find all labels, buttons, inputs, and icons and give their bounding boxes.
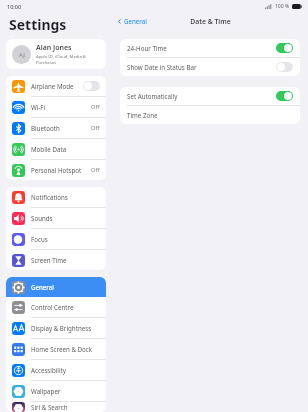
staticText: Mobile Data <box>31 145 100 153</box>
button[interactable]: Personal Hotspot <box>6 160 106 180</box>
staticText: Off <box>91 166 100 174</box>
staticText: Sounds <box>31 214 100 222</box>
staticText: Wi-Fi <box>31 103 91 111</box>
staticText: Airplane Mode <box>31 82 83 90</box>
button[interactable]: On <box>276 43 293 53</box>
button[interactable]: Set Automatically <box>120 87 300 105</box>
button[interactable]: General <box>6 277 106 297</box>
staticText: Time Zone <box>127 111 158 119</box>
staticText: Date & Time <box>190 17 231 26</box>
staticText: Apple ID, iCloud, Media & Purchases <box>36 54 100 66</box>
staticText: AJ <box>19 51 25 59</box>
button[interactable]: Airplane Mode <box>6 76 106 96</box>
staticText: 10:00 <box>7 3 22 10</box>
staticText: General <box>31 283 100 291</box>
button[interactable]: Mobile Data <box>6 139 106 159</box>
button[interactable]: Accessibility <box>6 360 106 380</box>
button[interactable]: Off <box>276 62 293 72</box>
staticText: General <box>124 17 147 25</box>
staticText: Siri & Search <box>31 403 100 411</box>
button[interactable]: Off <box>83 81 100 91</box>
button[interactable]: General <box>115 15 149 27</box>
staticText: Set Automatically <box>127 92 276 100</box>
staticText: Display & Brightness <box>31 324 100 332</box>
staticText: Accessibility <box>31 366 100 374</box>
button[interactable]: Siri & Search <box>6 402 106 412</box>
staticText: Notifications <box>31 193 100 201</box>
button[interactable]: AJ <box>6 39 106 69</box>
button[interactable]: Screen Time <box>6 250 106 270</box>
staticText: 24-Hour Time <box>127 44 276 52</box>
button[interactable]: Time Zone <box>120 106 300 124</box>
staticText: Off <box>91 103 100 111</box>
button[interactable]: Wi-Fi <box>6 97 106 117</box>
button[interactable]: Control Centre <box>6 297 106 317</box>
button[interactable]: Bluetooth <box>6 118 106 138</box>
button[interactable]: Display & Brightness <box>6 318 106 338</box>
button[interactable]: On <box>276 91 293 101</box>
button[interactable]: Focus <box>6 229 106 249</box>
staticText: Alan Jones <box>36 43 72 53</box>
staticText: Bluetooth <box>31 124 91 132</box>
button[interactable]: Wallpaper <box>6 381 106 401</box>
staticText: Personal Hotspot <box>31 166 91 174</box>
staticText: Focus <box>31 235 100 243</box>
staticText: Off <box>91 124 100 132</box>
staticText: Show Date in Status Bar <box>127 63 276 71</box>
button[interactable]: Show Date in Status Bar <box>120 58 300 76</box>
button[interactable]: Sounds <box>6 208 106 228</box>
staticText: Wallpaper <box>31 387 100 395</box>
staticText: Home Screen & Dock <box>31 345 100 353</box>
button[interactable]: Notifications <box>6 187 106 207</box>
staticText: Screen Time <box>31 256 100 264</box>
staticText: Settings <box>9 15 67 34</box>
staticText: Control Centre <box>31 303 100 311</box>
button[interactable]: Home Screen & Dock <box>6 339 106 359</box>
staticText: 100 % <box>275 3 290 10</box>
button[interactable]: 24-Hour Time <box>120 39 300 57</box>
